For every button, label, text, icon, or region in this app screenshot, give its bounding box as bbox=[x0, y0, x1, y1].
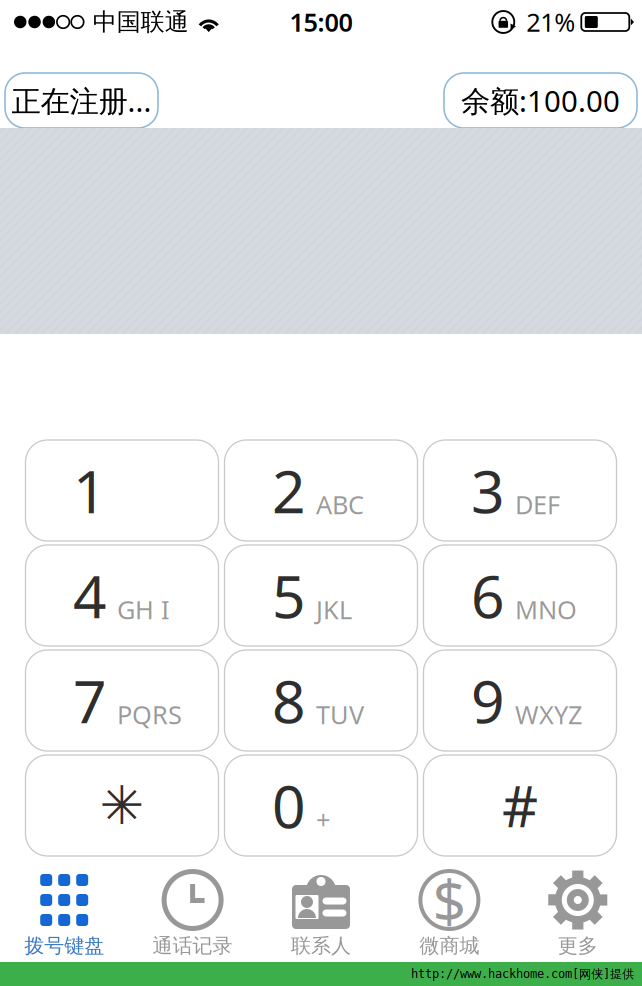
staticText: 6 bbox=[471, 556, 505, 634]
button[interactable]: 0 bbox=[224, 755, 417, 856]
staticText: # bbox=[502, 768, 538, 843]
staticText: 更多 bbox=[558, 933, 598, 958]
staticText: TUV bbox=[316, 698, 364, 731]
staticText: 通话记录 bbox=[153, 933, 233, 958]
button[interactable]: ✳ bbox=[25, 755, 218, 856]
staticText: 正在注册... bbox=[11, 81, 151, 120]
staticText: 拨号键盘 bbox=[24, 933, 104, 958]
staticText: 7 bbox=[73, 661, 107, 739]
staticText: 5 bbox=[272, 556, 306, 634]
staticText: 21% bbox=[526, 5, 575, 39]
staticText: 2 bbox=[272, 451, 306, 529]
button[interactable]: 5 bbox=[224, 545, 417, 646]
staticText: 3 bbox=[471, 451, 505, 529]
button[interactable]: 7 bbox=[25, 650, 218, 751]
button[interactable]: 联系人 bbox=[257, 856, 385, 962]
button[interactable]: $ bbox=[385, 856, 514, 962]
staticText: + bbox=[316, 803, 330, 836]
button[interactable]: 通话记录 bbox=[128, 856, 257, 962]
button[interactable]: 2 bbox=[224, 440, 417, 541]
staticText: ✳ bbox=[99, 775, 144, 836]
staticText: 15:00 bbox=[289, 5, 352, 39]
staticText: 中国联通 bbox=[93, 7, 189, 37]
staticText: 余额:100.00 bbox=[461, 81, 620, 120]
button[interactable]: 正在注册... bbox=[5, 73, 158, 128]
button[interactable]: 拨号键盘 bbox=[0, 856, 128, 962]
staticText: ABC bbox=[316, 488, 364, 521]
button[interactable]: 6 bbox=[423, 545, 616, 646]
staticText: 微商城 bbox=[419, 933, 479, 958]
staticText: 0 bbox=[272, 766, 306, 844]
staticText: 9 bbox=[471, 661, 505, 739]
staticText: http://www.hackhome.com[网侠]提供 bbox=[411, 967, 634, 981]
staticText: DEF bbox=[515, 488, 560, 521]
button[interactable]: 8 bbox=[224, 650, 417, 751]
staticText: $ bbox=[432, 861, 466, 939]
button[interactable]: 余额:100.00 bbox=[444, 73, 637, 128]
button[interactable]: # bbox=[423, 755, 616, 856]
staticText: 8 bbox=[272, 661, 306, 739]
staticText: 4 bbox=[73, 556, 107, 634]
staticText: JKL bbox=[316, 593, 352, 626]
button[interactable]: 3 bbox=[423, 440, 616, 541]
staticText: 联系人 bbox=[291, 933, 351, 958]
button[interactable]: 4 bbox=[25, 545, 218, 646]
button[interactable]: 1 bbox=[25, 440, 218, 541]
button[interactable]: 更多 bbox=[514, 856, 642, 962]
staticText: MNO bbox=[515, 593, 577, 626]
staticText: WXYZ bbox=[515, 698, 582, 731]
staticText: PQRS bbox=[117, 698, 182, 731]
button[interactable]: 9 bbox=[423, 650, 616, 751]
staticText: 1 bbox=[73, 451, 107, 529]
staticText: GH I bbox=[117, 593, 170, 626]
